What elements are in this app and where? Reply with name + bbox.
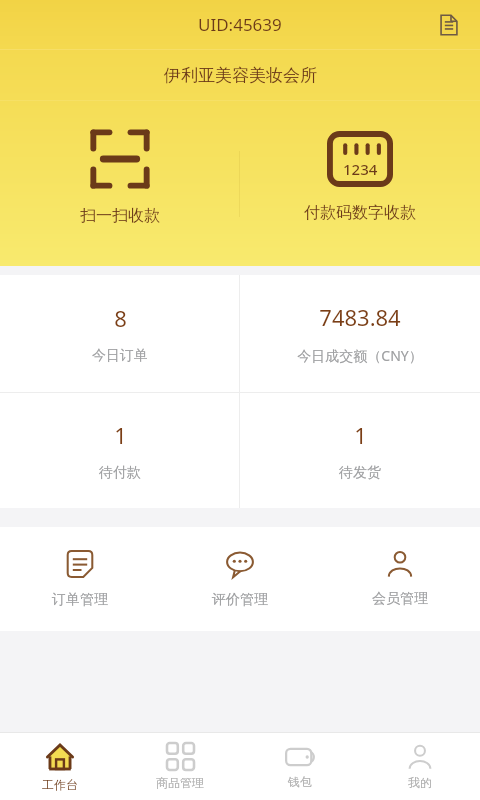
staticText: 1 (114, 420, 127, 450)
button[interactable]: 1234 (240, 101, 480, 266)
staticText: 订单管理 (52, 591, 108, 609)
button[interactable]: 8 (0, 275, 239, 392)
button[interactable]: 订单管理 (0, 527, 160, 631)
button[interactable]: 扫一扫收款 (0, 101, 239, 266)
staticText: 工作台 (42, 777, 78, 792)
staticText: 1234 (343, 159, 378, 179)
staticText: 扫一扫收款 (80, 206, 160, 226)
staticText: 伊利亚美容美妆会所 (164, 65, 317, 86)
staticText: 会员管理 (372, 590, 428, 608)
button[interactable]: 1 (0, 393, 239, 508)
staticText: UID:45639 (198, 13, 282, 36)
staticText: 我的 (408, 775, 432, 790)
staticText: 商品管理 (156, 775, 204, 790)
button[interactable]: 7483.84 (240, 275, 480, 392)
staticText: 待付款 (99, 464, 141, 482)
button[interactable]: 我的 (360, 733, 480, 800)
staticText: 1 (354, 420, 367, 450)
button[interactable]: 钱包 (240, 733, 360, 800)
staticText: 付款码数字收款 (304, 203, 416, 223)
staticText: 钱包 (288, 774, 312, 789)
staticText: 评价管理 (212, 591, 268, 609)
button[interactable]: 1 (240, 393, 480, 508)
button[interactable]: 商品管理 (120, 733, 240, 800)
staticText: 今日订单 (92, 347, 148, 365)
button[interactable]: 工作台 (0, 733, 120, 800)
button[interactable]: 评价管理 (160, 527, 320, 631)
button[interactable]: Report (432, 8, 466, 42)
staticText: 7483.84 (319, 302, 401, 332)
button[interactable]: 会员管理 (320, 527, 480, 631)
staticText: 待发货 (339, 464, 381, 482)
staticText: 8 (114, 303, 127, 333)
staticText: 今日成交额（CNY） (297, 346, 423, 365)
